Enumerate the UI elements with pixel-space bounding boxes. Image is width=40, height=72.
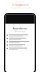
staticText: all of your work: [14, 31, 25, 33]
staticText: Introducing Research: [11, 4, 28, 6]
button[interactable]: [5, 34, 35, 36]
button[interactable]: [5, 48, 35, 50]
staticText: ANTHROPIC: [16, 1, 24, 3]
button[interactable]: [5, 38, 35, 40]
button[interactable]: [5, 41, 35, 43]
staticText: Research across: [13, 28, 27, 30]
staticText: A new agentic research capability: [9, 7, 30, 9]
button[interactable]: [5, 44, 35, 46]
